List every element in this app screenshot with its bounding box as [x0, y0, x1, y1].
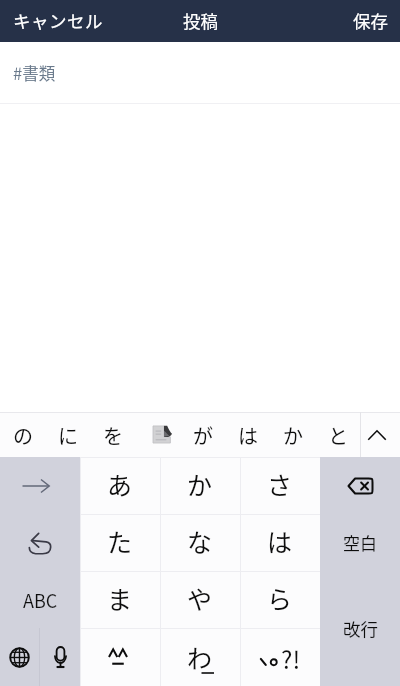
button[interactable]: か: [160, 457, 240, 514]
staticText: が: [193, 421, 213, 450]
button[interactable]: は: [225, 412, 270, 457]
button[interactable]: な: [160, 514, 240, 571]
button[interactable]: Undo: [0, 514, 80, 571]
staticText: た: [107, 523, 133, 559]
staticText: は: [238, 421, 258, 450]
staticText: 改行: [343, 616, 378, 641]
button[interactable]: Next: [0, 457, 80, 514]
staticText: か: [187, 466, 213, 502]
staticText: の: [13, 421, 33, 450]
button[interactable]: Backspace: [320, 457, 400, 514]
button[interactable]: 保存: [340, 0, 400, 42]
button[interactable]: た: [80, 514, 160, 571]
button[interactable]: 空白: [320, 514, 400, 571]
staticText: と: [328, 421, 348, 450]
button[interactable]: が: [180, 412, 225, 457]
staticText: あ: [107, 466, 133, 502]
button[interactable]: さ: [240, 457, 320, 514]
staticText: に: [58, 421, 78, 450]
staticText: わ: [187, 639, 213, 675]
button[interactable]: Expand suggestions: [361, 412, 400, 457]
button[interactable]: あ: [80, 457, 160, 514]
button[interactable]: ま: [80, 571, 160, 628]
staticText: #書類: [13, 61, 56, 85]
staticText: を: [103, 421, 123, 450]
staticText: 投稿: [183, 8, 218, 33]
button[interactable]: Change keyboard language: [0, 628, 39, 686]
button[interactable]: は: [240, 514, 320, 571]
staticText: は: [267, 523, 293, 559]
staticText: キャンセル: [13, 8, 103, 33]
button[interactable]: や: [160, 571, 240, 628]
staticText: ?!: [281, 641, 301, 671]
button[interactable]: に: [45, 412, 90, 457]
button[interactable]: わ: [160, 628, 240, 686]
staticText: 保存: [353, 8, 388, 33]
button[interactable]: と: [315, 412, 360, 457]
staticText: や: [187, 580, 213, 616]
staticText: か: [283, 421, 303, 450]
button[interactable]: Document emoji: [135, 412, 180, 457]
button[interactable]: か: [270, 412, 315, 457]
staticText: ま: [107, 580, 133, 616]
staticText: ら: [267, 580, 293, 616]
button[interactable]: を: [90, 412, 135, 457]
button[interactable]: ABC: [0, 571, 80, 628]
staticText: 空白: [343, 530, 377, 555]
button[interactable]: 改行: [320, 571, 400, 686]
button[interactable]: キャンセル: [0, 0, 116, 42]
button[interactable]: Emoticon: [80, 628, 160, 686]
other: Document emoji: [152, 425, 172, 444]
button[interactable]: ら: [240, 571, 320, 628]
staticText: な: [187, 523, 213, 559]
button[interactable]: ?!: [240, 628, 320, 686]
staticText: ABC: [23, 587, 58, 613]
staticText: さ: [267, 466, 293, 502]
button[interactable]: Voice input: [40, 628, 80, 686]
button[interactable]: の: [0, 412, 45, 457]
